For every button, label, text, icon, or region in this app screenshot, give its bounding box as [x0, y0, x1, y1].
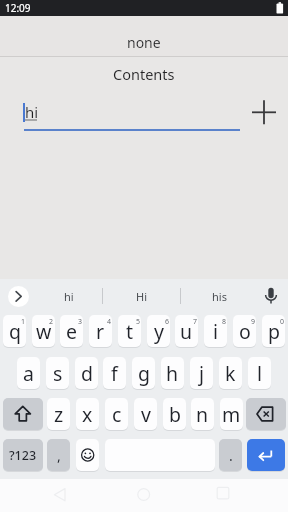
staticText: 6 — [165, 317, 170, 326]
button[interactable]: a — [17, 357, 40, 389]
staticText: m — [222, 401, 241, 428]
staticText: Hi — [136, 289, 147, 304]
staticText: ?123 — [9, 447, 37, 464]
button[interactable] — [211, 482, 235, 506]
staticText: c — [112, 401, 122, 428]
button[interactable]: Hi — [102, 283, 180, 309]
staticText: 2 — [49, 317, 54, 326]
staticText: 9 — [251, 317, 256, 326]
button[interactable]: v — [134, 398, 157, 430]
staticText: d — [81, 360, 93, 387]
button[interactable] — [250, 98, 278, 126]
button[interactable]: z — [47, 398, 70, 430]
button[interactable]: f — [103, 357, 126, 389]
button[interactable]: y — [147, 315, 170, 347]
staticText: e — [66, 318, 77, 345]
staticText: s — [53, 360, 63, 387]
button[interactable] — [3, 398, 43, 430]
staticText: l — [257, 360, 263, 387]
button[interactable]: h — [161, 357, 184, 389]
button[interactable]: x — [76, 398, 99, 430]
button[interactable]: hi — [36, 283, 102, 309]
staticText: r — [96, 318, 105, 345]
button[interactable]: c — [105, 398, 128, 430]
button[interactable]: ?123 — [3, 439, 43, 471]
button[interactable]: . — [219, 439, 242, 471]
button[interactable] — [260, 285, 282, 308]
staticText: x — [82, 401, 93, 428]
button[interactable]: q — [3, 315, 26, 347]
staticText: t — [126, 318, 134, 345]
staticText: o — [239, 318, 251, 345]
button[interactable] — [16, 96, 242, 136]
staticText: w — [36, 318, 52, 345]
button[interactable]: his — [180, 283, 258, 309]
staticText: his — [212, 289, 227, 304]
staticText: 1 — [21, 317, 26, 326]
button[interactable] — [132, 482, 156, 506]
staticText: none — [127, 33, 161, 49]
button[interactable]: e — [60, 315, 83, 347]
button[interactable]: j — [190, 357, 213, 389]
staticText: z — [54, 401, 64, 428]
button[interactable]: d — [75, 357, 98, 389]
button[interactable]: u — [175, 315, 198, 347]
staticText: 12:09 — [5, 1, 31, 15]
staticText: a — [23, 360, 34, 387]
button[interactable] — [246, 398, 286, 430]
button[interactable]: m — [220, 398, 243, 430]
button[interactable]: b — [163, 398, 186, 430]
staticText: n — [196, 401, 209, 428]
staticText: b — [169, 401, 181, 428]
button[interactable]: s — [46, 357, 69, 389]
staticText: h — [166, 360, 179, 387]
button[interactable] — [48, 482, 72, 506]
button[interactable]: i — [204, 315, 227, 347]
staticText: 7 — [193, 317, 198, 326]
staticText: i — [213, 318, 219, 345]
button[interactable] — [76, 439, 99, 471]
button[interactable]: k — [219, 357, 242, 389]
staticText: Contents — [113, 64, 175, 82]
button[interactable]: l — [248, 357, 271, 389]
staticText: . — [229, 446, 233, 465]
staticText: 4 — [107, 317, 112, 326]
button[interactable]: p — [262, 315, 285, 347]
button[interactable]: n — [191, 398, 214, 430]
button[interactable] — [247, 439, 285, 471]
staticText: hi — [25, 102, 39, 120]
staticText: 8 — [222, 317, 227, 326]
button[interactable]: r — [89, 315, 112, 347]
button[interactable]: g — [132, 357, 155, 389]
staticText: v — [141, 401, 151, 428]
staticText: j — [199, 360, 205, 387]
staticText: k — [225, 360, 236, 387]
button[interactable]: t — [118, 315, 141, 347]
staticText: hi — [64, 289, 74, 304]
staticText: g — [138, 360, 150, 387]
button[interactable]: w — [32, 315, 55, 347]
staticText: 3 — [78, 317, 83, 326]
button[interactable] — [8, 286, 29, 307]
staticText: u — [180, 318, 193, 345]
button[interactable]: , — [47, 439, 70, 471]
staticText: y — [154, 318, 164, 345]
staticText: , — [57, 446, 61, 465]
button[interactable]: o — [233, 315, 256, 347]
staticText: f — [111, 360, 118, 387]
staticText: q — [9, 318, 21, 345]
staticText: p — [268, 318, 280, 345]
staticText: 5 — [136, 317, 141, 326]
staticText: 0 — [280, 317, 285, 326]
